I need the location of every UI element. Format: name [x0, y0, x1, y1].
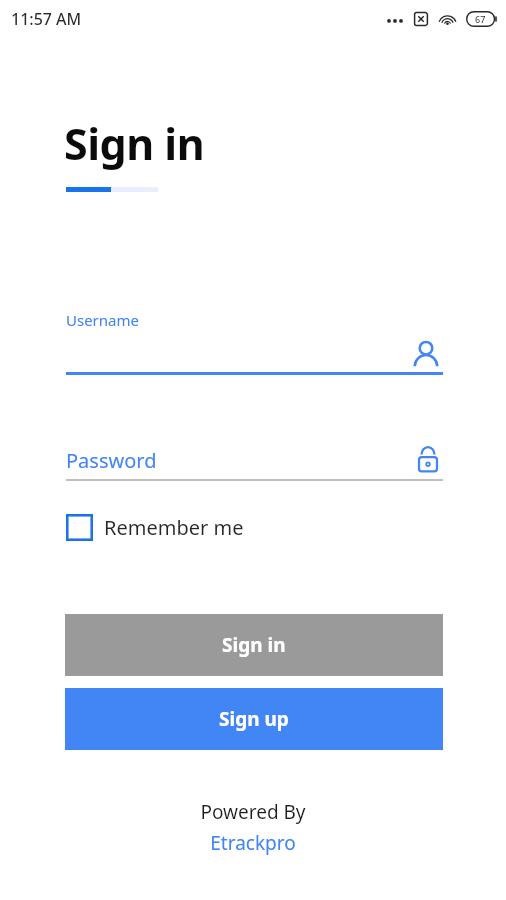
staticText: Remember me [104, 514, 244, 541]
button[interactable]: Sign in [65, 614, 443, 676]
staticText: Sign up [219, 706, 289, 732]
staticText: Sign in [222, 632, 286, 658]
staticText: Username [66, 310, 139, 330]
other: User [409, 338, 443, 372]
other: Password [413, 445, 443, 475]
staticText: 11:57 AM [11, 8, 82, 30]
button[interactable]: Sign up [65, 688, 443, 750]
button[interactable]: Username [66, 310, 443, 375]
staticText: 67 [475, 13, 486, 25]
button[interactable]: Remember me [66, 514, 244, 541]
staticText: Password [66, 447, 157, 474]
button[interactable]: Etrackpro [210, 830, 296, 856]
staticText: Sign in [64, 114, 205, 173]
button[interactable]: Password [66, 441, 443, 481]
staticText: Powered By [200, 799, 306, 825]
